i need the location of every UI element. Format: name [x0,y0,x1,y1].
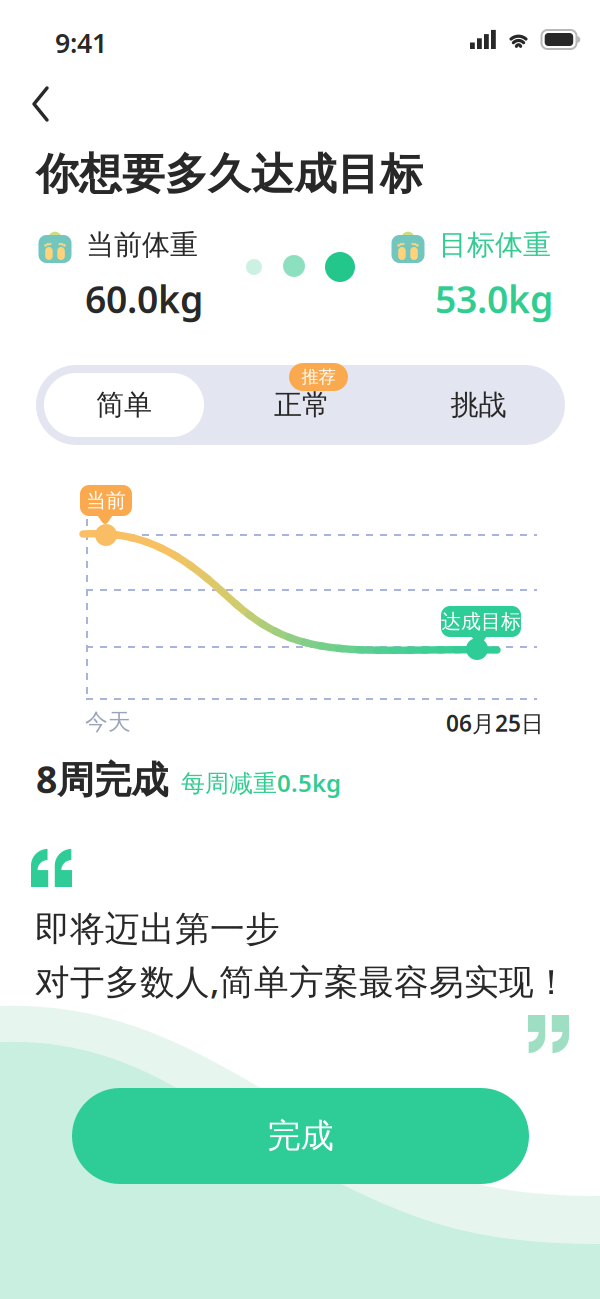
staticText: 达成目标 [441,609,521,634]
staticText: 8周完成 [36,754,168,804]
staticText: 即将迈出第一步 [35,908,280,951]
button[interactable]: 完成 [72,1088,529,1184]
staticText: 简单 [96,388,152,422]
staticText: 60.0kg [85,274,203,324]
staticText: 9:41 [55,25,107,60]
staticText: 对于多数人,简单方案最容易实现！ [35,958,569,1004]
staticText: 当前 [86,488,126,513]
button[interactable]: 挑战 [392,365,565,445]
staticText: 你想要多久达成目标 [36,148,423,200]
staticText: 正常 [274,388,330,422]
staticText: 今天 [85,708,131,736]
button[interactable]: Back [22,78,66,126]
staticText: 06月25日 [446,708,544,738]
staticText: 每周减重0.5kg [181,767,341,799]
button[interactable]: 简单 [36,365,212,445]
button[interactable]: 正常 [212,365,392,445]
staticText: 53.0kg [435,274,553,324]
button[interactable]: 推荐 [289,363,348,391]
staticText: 目标体重 [439,228,551,262]
staticText: 完成 [267,1115,333,1156]
staticText: 推荐 [301,366,335,388]
staticText: 当前体重 [86,228,198,262]
staticText: 挑战 [450,388,506,422]
